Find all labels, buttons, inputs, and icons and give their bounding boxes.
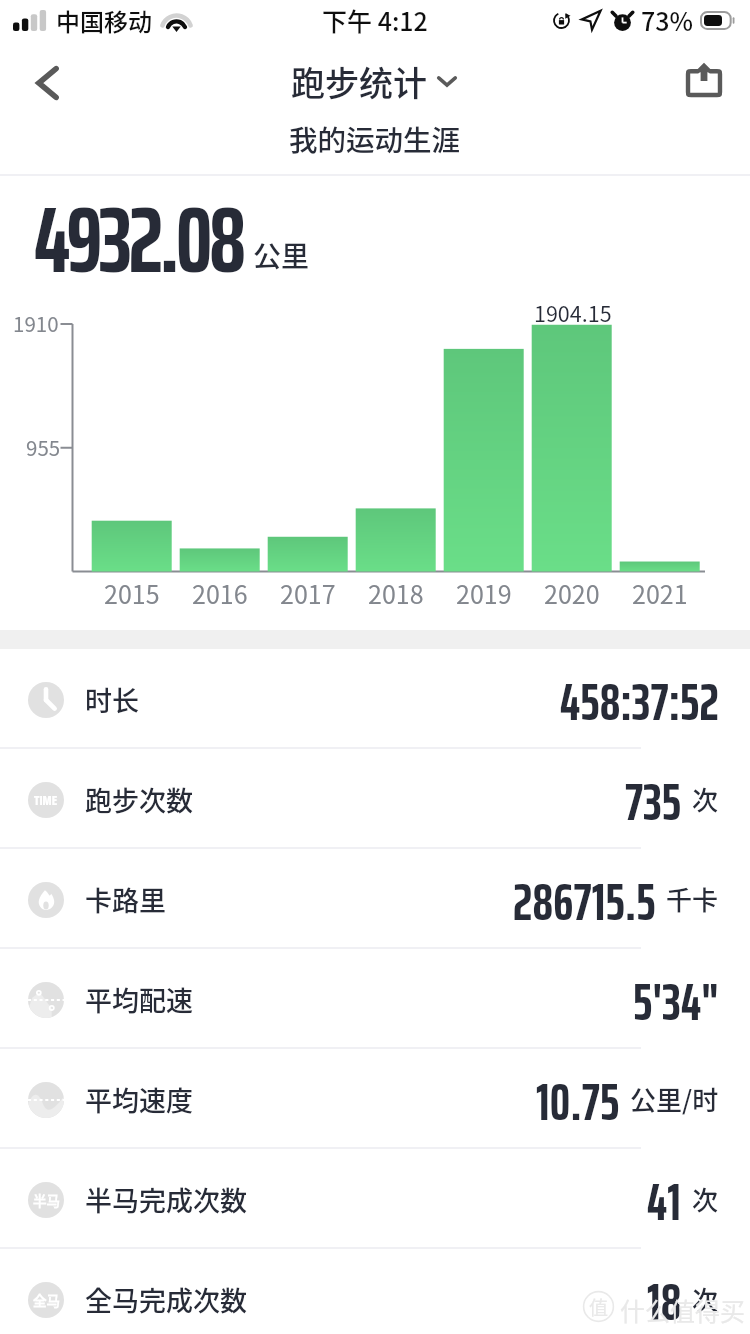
staticText: 735 xyxy=(625,762,682,842)
staticText: 跑步统计 xyxy=(291,57,427,106)
staticText: 1904.15 xyxy=(534,297,612,328)
button[interactable]: TIME xyxy=(0,749,750,849)
staticText: 中国移动 xyxy=(56,3,152,38)
button[interactable]: 返回 xyxy=(15,54,79,112)
staticText: 公里 xyxy=(253,235,310,276)
staticText: 次 xyxy=(692,780,719,818)
button[interactable]: 卡路里 xyxy=(0,849,750,949)
staticText: 2017 xyxy=(280,575,336,611)
button[interactable]: 平均配速 xyxy=(0,949,750,1049)
button[interactable]: 分享 xyxy=(672,50,736,108)
staticText: 73% xyxy=(641,2,693,38)
staticText: 2016 xyxy=(192,575,248,611)
staticText: 2019 xyxy=(456,575,512,611)
staticText: 平均速度 xyxy=(85,1080,193,1119)
staticText: 1910 xyxy=(13,308,59,338)
staticText: 下午 4:12 xyxy=(322,2,428,38)
button[interactable]: 时长 xyxy=(0,649,750,749)
staticText: 2021 xyxy=(632,575,688,611)
staticText: 次 xyxy=(692,1180,719,1218)
staticText: 次 xyxy=(692,1280,719,1318)
staticText: 公里/时 xyxy=(630,1080,719,1118)
staticText: 955 xyxy=(26,432,61,462)
staticText: 跑步次数 xyxy=(85,780,193,819)
staticText: 千卡 xyxy=(666,880,719,918)
staticText: 平均配速 xyxy=(85,980,193,1019)
staticText: 18 xyxy=(647,1262,682,1334)
staticText: 286715.5 xyxy=(513,862,656,942)
button[interactable]: 全马 xyxy=(0,1249,750,1334)
staticText: 2015 xyxy=(104,575,160,611)
staticText: 10.75 xyxy=(536,1062,620,1142)
staticText: 值 xyxy=(589,1293,609,1321)
staticText: 458:37:52 xyxy=(560,662,719,742)
button[interactable]: 半马 xyxy=(0,1149,750,1249)
staticText: 半马完成次数 xyxy=(85,1180,247,1219)
staticText: 2020 xyxy=(544,575,600,611)
staticText: 全马 xyxy=(33,1290,60,1310)
staticText: 时长 xyxy=(85,680,139,719)
staticText: 半马 xyxy=(33,1190,60,1210)
staticText: 2018 xyxy=(368,575,424,611)
staticText: TIME xyxy=(34,790,58,810)
button[interactable]: 平均速度 xyxy=(0,1049,750,1149)
button[interactable]: 跑步统计 xyxy=(291,57,456,106)
staticText: 我的运动生涯 xyxy=(289,118,461,159)
staticText: 41 xyxy=(647,1162,682,1242)
staticText: 全马完成次数 xyxy=(85,1280,247,1319)
staticText: 卡路里 xyxy=(85,880,166,919)
staticText: 什么值得买 xyxy=(620,1292,746,1328)
staticText: 5'34" xyxy=(633,962,719,1042)
staticText: 4932.08 xyxy=(34,168,243,313)
